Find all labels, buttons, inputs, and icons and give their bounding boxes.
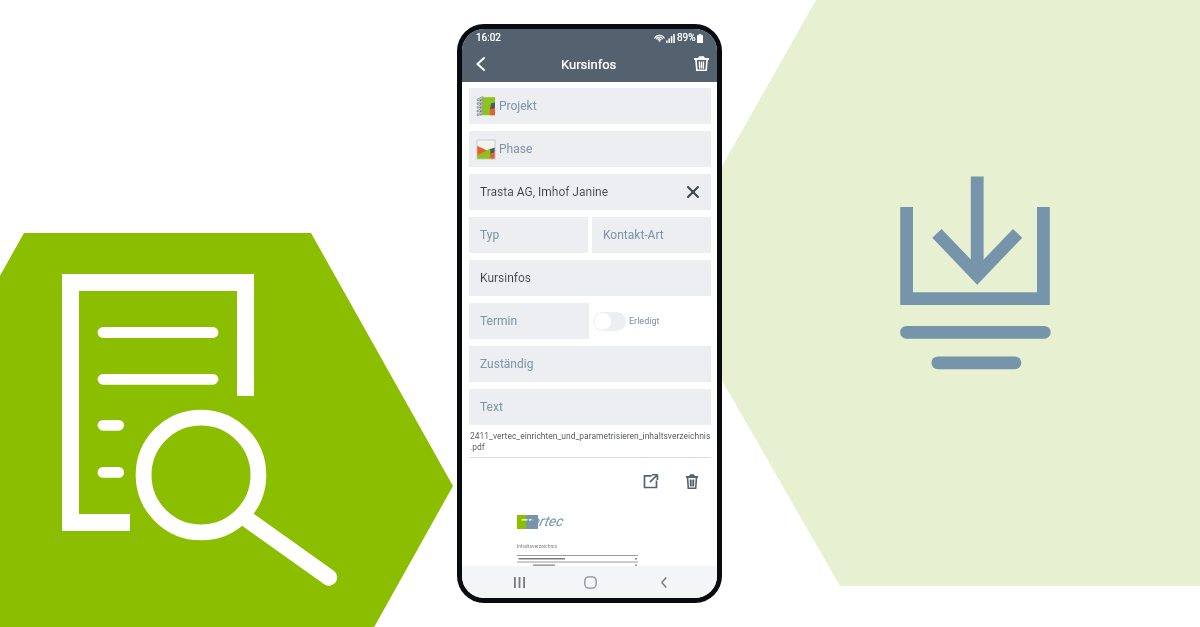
staticText: Zuständig (480, 357, 534, 371)
button[interactable]: Termin (469, 303, 589, 339)
button[interactable]: Home (570, 566, 610, 598)
staticText: Phase (499, 142, 533, 156)
staticText: Kursinfos (561, 57, 617, 72)
button[interactable]: Recent apps (499, 566, 539, 598)
button[interactable]: Text (469, 389, 711, 425)
button[interactable]: Phase (469, 131, 711, 167)
button[interactable]: Erledigt (593, 308, 660, 335)
button[interactable]: Kursinfos (469, 260, 711, 296)
button[interactable]: Back (644, 566, 684, 598)
button[interactable]: Trasta AG, Imhof Janine (469, 174, 711, 210)
staticText: 89% (677, 32, 696, 44)
button[interactable]: Kontakt-Art (592, 217, 711, 253)
staticText: Termin (480, 314, 518, 328)
staticText: Kontakt-Art (603, 228, 664, 242)
button[interactable]: Projekt (469, 88, 711, 124)
button[interactable]: Delete file (680, 469, 704, 493)
button[interactable]: Zuständig (469, 346, 711, 382)
button[interactable]: Delete (683, 45, 717, 81)
staticText: 2411_vertec_einrichten_und_parametrisier… (470, 431, 711, 452)
button[interactable]: Clear (680, 179, 706, 205)
button[interactable]: Back (462, 46, 498, 82)
staticText: vertec (525, 513, 563, 529)
staticText: Inhaltsverzeichnis (517, 543, 557, 549)
staticText: Projekt (499, 99, 537, 113)
staticText: 16:02 (476, 32, 501, 44)
button[interactable]: Typ (469, 217, 588, 253)
button[interactable]: Open file (638, 469, 662, 493)
staticText: Erledigt (629, 316, 660, 327)
staticText: Trasta AG, Imhof Janine (480, 185, 609, 199)
staticText: Typ (480, 228, 500, 242)
staticText: Kursinfos (480, 271, 532, 285)
staticText: Text (480, 400, 503, 414)
